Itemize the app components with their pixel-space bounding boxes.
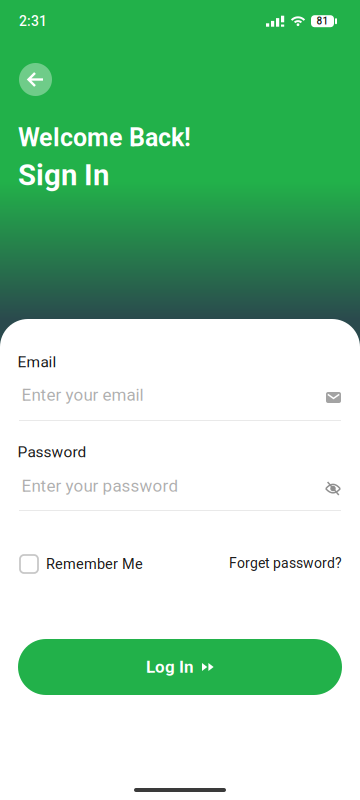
staticText: Welcome Back! [18,123,191,152]
staticText: Remember Me [46,555,143,572]
button[interactable]: Show password [325,482,341,495]
button[interactable]: Log In [18,639,342,695]
staticText: Sign In [18,158,109,192]
staticText: Forget password? [229,555,342,571]
staticText: 81 [316,15,328,27]
staticText: Log In [146,657,194,677]
button[interactable]: Remember Me [20,555,143,573]
staticText: Enter your email [21,385,143,405]
button[interactable]: Forget password? [229,555,342,571]
staticText: Enter your password [21,476,178,496]
staticText: Email [17,353,56,371]
staticText: 2:31 [19,13,47,29]
staticText: Password [17,443,86,461]
button[interactable]: Back [19,63,52,96]
